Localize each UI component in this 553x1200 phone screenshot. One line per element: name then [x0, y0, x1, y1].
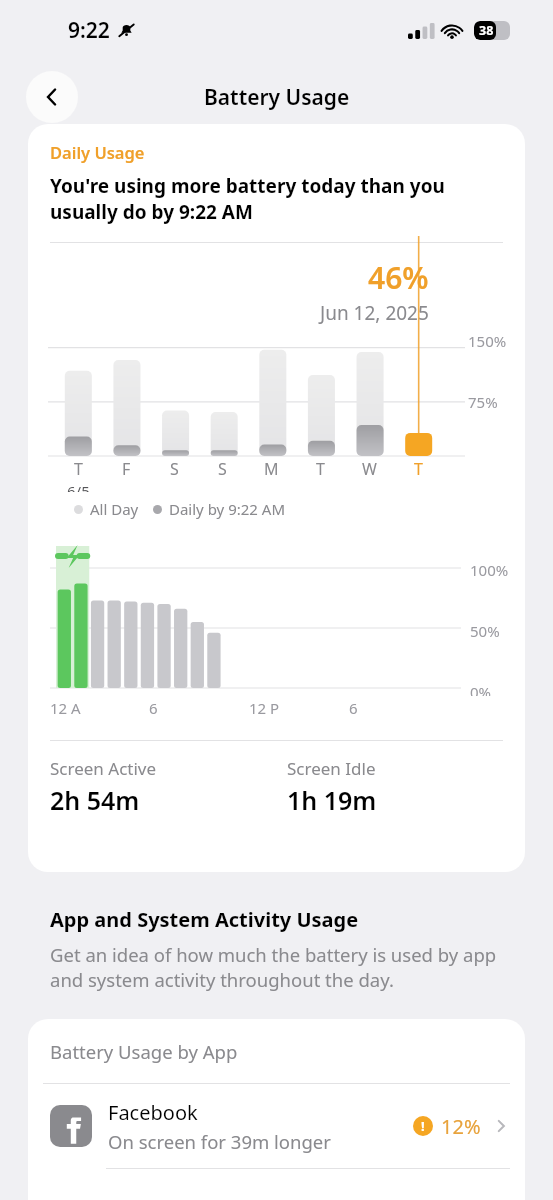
- staticText: 12 P: [249, 698, 280, 718]
- staticText: Get an idea of how much the battery is u…: [50, 942, 513, 992]
- staticText: Screen Idle: [287, 757, 376, 780]
- staticText: T: [316, 458, 325, 480]
- staticText: Screen Active: [50, 757, 157, 780]
- staticText: 75%: [468, 392, 498, 412]
- staticText: 12%: [441, 1113, 481, 1140]
- staticText: T: [414, 458, 423, 480]
- staticText: Battery Usage by App: [50, 1039, 238, 1064]
- staticText: S: [170, 458, 179, 480]
- staticText: 9:22: [68, 16, 110, 45]
- staticText: App and System Activity Usage: [50, 906, 359, 933]
- staticText: T: [74, 458, 83, 480]
- button[interactable]: Back: [26, 71, 78, 123]
- staticText: W: [362, 458, 377, 480]
- staticText: 12 A: [50, 698, 81, 718]
- staticText: 6/5: [67, 481, 90, 492]
- staticText: Battery Usage: [204, 83, 350, 112]
- staticText: 1h 19m: [287, 783, 377, 817]
- button[interactable]: Facebook: [28, 1084, 525, 1168]
- staticText: 150%: [468, 331, 507, 351]
- staticText: F: [122, 458, 131, 480]
- staticText: 38: [479, 22, 494, 39]
- staticText: 2h 54m: [50, 783, 140, 817]
- staticText: On screen for 39m longer: [108, 1129, 331, 1154]
- staticText: All Day: [90, 499, 139, 519]
- staticText: You're using more battery today than you…: [50, 173, 507, 224]
- staticText: 6: [149, 698, 158, 718]
- staticText: Facebook: [108, 1099, 198, 1126]
- staticText: Daily by 9:22 AM: [169, 499, 285, 519]
- staticText: Jun 12, 2025: [320, 300, 429, 326]
- staticText: S: [218, 458, 227, 480]
- staticText: M: [264, 458, 279, 480]
- staticText: !: [421, 1117, 425, 1135]
- staticText: Daily Usage: [50, 141, 145, 163]
- staticText: 100%: [470, 560, 509, 580]
- staticText: 50%: [470, 621, 500, 641]
- staticText: 46%: [368, 257, 429, 298]
- staticText: 6: [349, 698, 358, 718]
- staticText: 0%: [470, 682, 492, 696]
